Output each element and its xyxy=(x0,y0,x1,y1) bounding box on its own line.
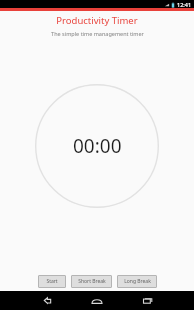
staticText: Long Break xyxy=(124,278,151,285)
button[interactable]: Short Break xyxy=(71,275,112,288)
staticText: Start xyxy=(46,278,58,285)
staticText: 12:41 xyxy=(177,1,192,8)
button[interactable]: Start xyxy=(38,275,66,288)
button[interactable]: Long Break xyxy=(117,275,157,288)
staticText: The simple time management timer xyxy=(51,30,144,37)
staticText: Productivity Timer xyxy=(56,14,138,27)
button[interactable]: Recent apps xyxy=(131,291,165,310)
staticText: 00:00 xyxy=(73,133,122,159)
staticText: Short Break xyxy=(78,278,106,285)
button[interactable]: Home xyxy=(80,291,114,310)
button[interactable]: 00:00 xyxy=(35,84,159,208)
button[interactable]: Back xyxy=(29,291,63,310)
